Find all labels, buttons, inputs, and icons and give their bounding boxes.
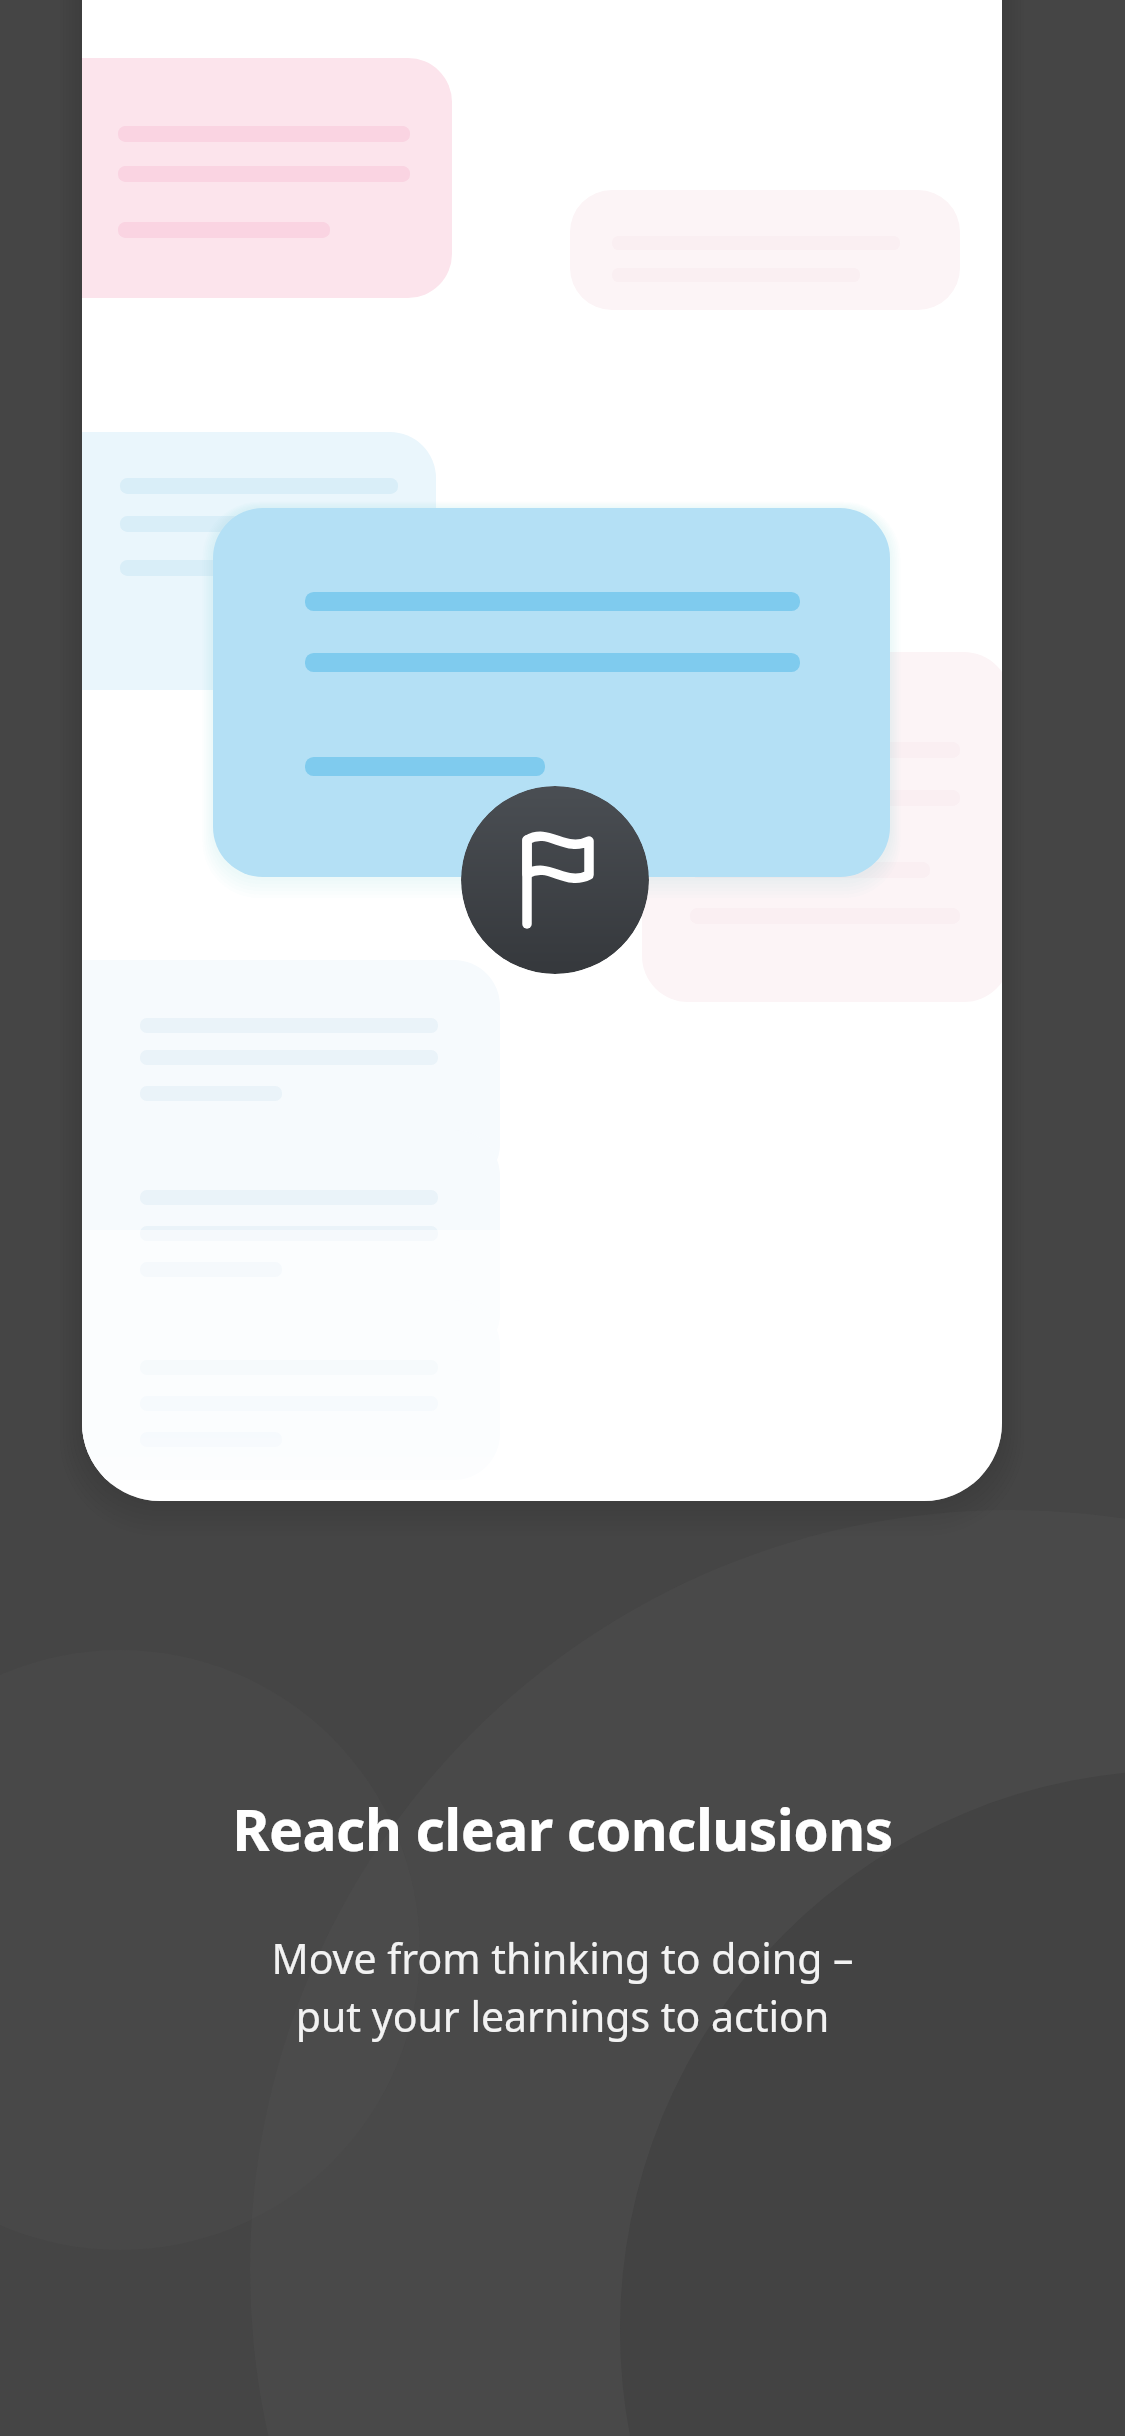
staticText: Move from thinking to doing – put your l…: [271, 1930, 854, 2044]
button[interactable]: Flag conclusion: [461, 786, 649, 974]
staticText: Reach clear conclusions: [232, 1790, 893, 1868]
button[interactable]: Flag conclusion: [0, 0, 1125, 2436]
